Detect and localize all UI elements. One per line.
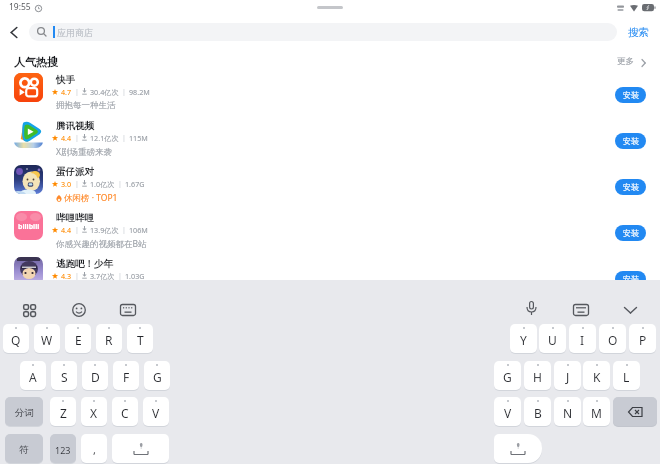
staticText: |	[118, 271, 122, 280]
staticText: 符	[19, 444, 29, 456]
staticText: Y	[520, 332, 527, 348]
button[interactable]	[69, 300, 89, 320]
staticText: 安装	[623, 136, 639, 146]
button[interactable]: 安装	[615, 225, 646, 241]
staticText: 分词	[15, 407, 34, 419]
staticText: N	[563, 405, 573, 421]
button[interactable]: 安装	[615, 179, 646, 195]
button[interactable]: Q	[3, 324, 29, 353]
staticText: B	[534, 405, 542, 421]
button[interactable]: G	[144, 361, 170, 390]
button[interactable]: G	[494, 361, 521, 390]
button[interactable]: X	[81, 397, 107, 426]
button[interactable]: R	[96, 324, 122, 353]
staticText: 应用商店	[57, 27, 93, 38]
button[interactable]: S	[51, 361, 77, 390]
button[interactable]: 应用商店	[29, 23, 617, 41]
button[interactable]: 安装	[615, 271, 646, 287]
staticText: 98.2M	[129, 87, 150, 96]
button[interactable]: B	[524, 397, 551, 426]
staticText: |	[118, 179, 122, 188]
staticText: 1.03G	[125, 271, 145, 280]
button[interactable]	[0, 119, 660, 163]
staticText: A	[29, 369, 37, 385]
staticText: 安装	[623, 182, 639, 192]
button[interactable]: O	[599, 324, 626, 353]
button[interactable]: M	[583, 397, 610, 426]
staticText: X	[90, 405, 98, 421]
button[interactable]: 安装	[615, 133, 646, 149]
staticText: |	[122, 87, 126, 96]
staticText: 搜索	[628, 26, 649, 39]
staticText: J	[566, 369, 570, 385]
staticText: 19:55	[9, 1, 31, 13]
button[interactable]: V	[494, 397, 521, 426]
staticText: 13.9亿次	[90, 225, 119, 234]
staticText: 1.0亿次	[90, 179, 115, 188]
staticText: 休闲榜 · TOP1	[64, 192, 118, 204]
staticText: |	[75, 225, 79, 234]
button[interactable]	[0, 211, 660, 255]
staticText: 30.4亿次	[90, 87, 119, 96]
button[interactable]: K	[583, 361, 610, 390]
button[interactable]: 分词	[5, 397, 43, 426]
button[interactable]: Z	[50, 397, 76, 426]
button[interactable]	[613, 397, 657, 426]
staticText: |	[75, 87, 79, 96]
button[interactable]: F	[113, 361, 139, 390]
button[interactable]	[112, 434, 169, 463]
button[interactable]	[571, 300, 591, 320]
button[interactable]: H	[524, 361, 551, 390]
button[interactable]: D	[82, 361, 108, 390]
staticText: X剧场重磅来袭	[56, 146, 112, 158]
button[interactable]: ,	[81, 434, 107, 463]
button[interactable]	[612, 55, 652, 69]
button[interactable]	[0, 257, 660, 301]
button[interactable]: 安装	[615, 87, 646, 103]
staticText: D	[91, 369, 100, 385]
button[interactable]	[118, 300, 138, 320]
button[interactable]	[494, 434, 542, 463]
button[interactable]: N	[554, 397, 581, 426]
staticText: Q	[11, 332, 21, 348]
staticText: 4.4	[61, 133, 72, 142]
staticText: E	[75, 332, 82, 348]
button[interactable]: I	[569, 324, 596, 353]
button[interactable]	[622, 22, 654, 42]
staticText: T	[137, 332, 144, 348]
staticText: 快手	[56, 74, 75, 86]
staticText: |	[122, 225, 126, 234]
staticText: 4.3	[61, 271, 72, 280]
button[interactable]: A	[20, 361, 46, 390]
staticText: |	[75, 271, 79, 280]
button[interactable]	[19, 300, 39, 320]
staticText: U	[548, 332, 557, 348]
staticText: 安装	[623, 228, 639, 238]
staticText: S	[61, 369, 68, 385]
button[interactable]: 符	[5, 434, 43, 463]
staticText: H	[533, 369, 542, 385]
staticText: G	[503, 369, 512, 385]
staticText: |	[122, 133, 126, 142]
button[interactable]: Y	[510, 324, 537, 353]
button[interactable]: P	[629, 324, 656, 353]
button[interactable]: E	[65, 324, 91, 353]
button[interactable]: 123	[50, 434, 76, 463]
button[interactable]	[0, 165, 660, 209]
button[interactable]	[521, 298, 541, 318]
button[interactable]: U	[539, 324, 566, 353]
staticText: G	[153, 369, 162, 385]
staticText: K	[593, 369, 601, 385]
button[interactable]: J	[554, 361, 581, 390]
button[interactable]: L	[613, 361, 640, 390]
button[interactable]: C	[112, 397, 138, 426]
button[interactable]	[620, 300, 640, 320]
button[interactable]: W	[34, 324, 60, 353]
button[interactable]: T	[127, 324, 153, 353]
button[interactable]: V	[143, 397, 169, 426]
staticText: C	[121, 405, 129, 421]
staticText: 拥抱每一种生活	[56, 100, 116, 111]
button[interactable]	[4, 22, 24, 42]
button[interactable]	[0, 73, 660, 117]
staticText: 哔哩哔哩	[56, 212, 94, 224]
